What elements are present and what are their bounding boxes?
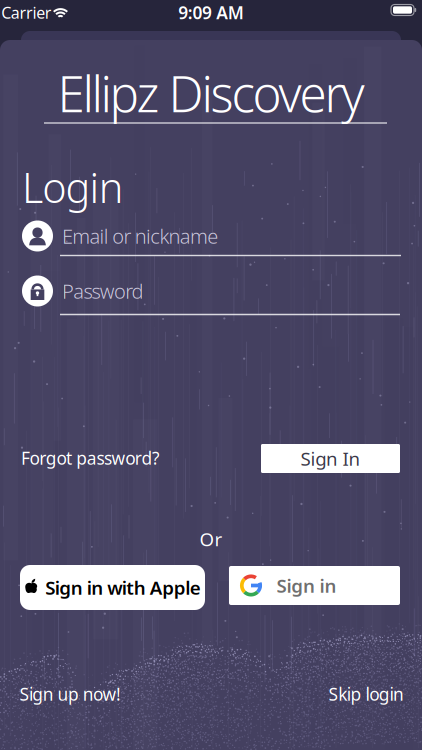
staticText: Forgot password? [21,446,160,469]
button[interactable]: Password [0,275,422,306]
staticText: Sign In [301,446,360,471]
staticText: Login [22,160,124,214]
staticText: Email or nickname [62,223,218,249]
staticText: Password [62,278,143,304]
button[interactable]: Skip login [329,682,404,705]
button[interactable]: Sign In [261,444,400,473]
button[interactable]: Email or nickname [0,220,422,251]
button[interactable]: Forgot password? [21,446,160,469]
button[interactable]: Sign in [229,566,400,605]
staticText: 9:09 AM [178,1,244,24]
staticText: Or [199,527,222,551]
staticText: Sign in [277,573,336,598]
button[interactable]: Sign up now! [19,682,121,705]
staticText: Skip login [329,682,404,705]
staticText: Sign up now! [19,682,121,705]
staticText: Ellipz Discovery [57,60,364,126]
button[interactable]: Sign in with Apple [20,565,205,610]
staticText: Carrier [1,2,52,23]
staticText: Sign in with Apple [45,575,201,600]
